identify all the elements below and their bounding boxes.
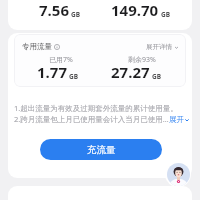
- staticText: 1.77: [37, 62, 67, 82]
- staticText: 7.56: [39, 0, 69, 20]
- staticText: GB: [161, 10, 171, 19]
- button[interactable]: Customer service: [165, 161, 191, 187]
- staticText: 充流量: [87, 144, 116, 156]
- button[interactable]: 充流量: [40, 139, 162, 160]
- staticText: 剩余93%: [128, 55, 156, 65]
- button[interactable]: 展开详情: [146, 43, 179, 51]
- staticText: 149.70: [111, 0, 159, 20]
- staticText: 展开: [169, 115, 184, 124]
- staticText: 展开详情: [146, 43, 172, 51]
- button[interactable]: 展开: [169, 115, 190, 124]
- staticText: 2.跨月流量包上月已使用量会计入当月已使用…: [14, 114, 169, 124]
- staticText: 27.27: [111, 62, 150, 82]
- staticText: GB: [71, 10, 81, 19]
- staticText: 1.超出流量为有效及过期套外流量的累计使用量。: [14, 103, 178, 113]
- staticText: GB: [69, 72, 79, 81]
- staticText: GB: [152, 72, 162, 81]
- staticText: 专用流量: [22, 42, 52, 51]
- staticText: 已用7%: [49, 55, 73, 65]
